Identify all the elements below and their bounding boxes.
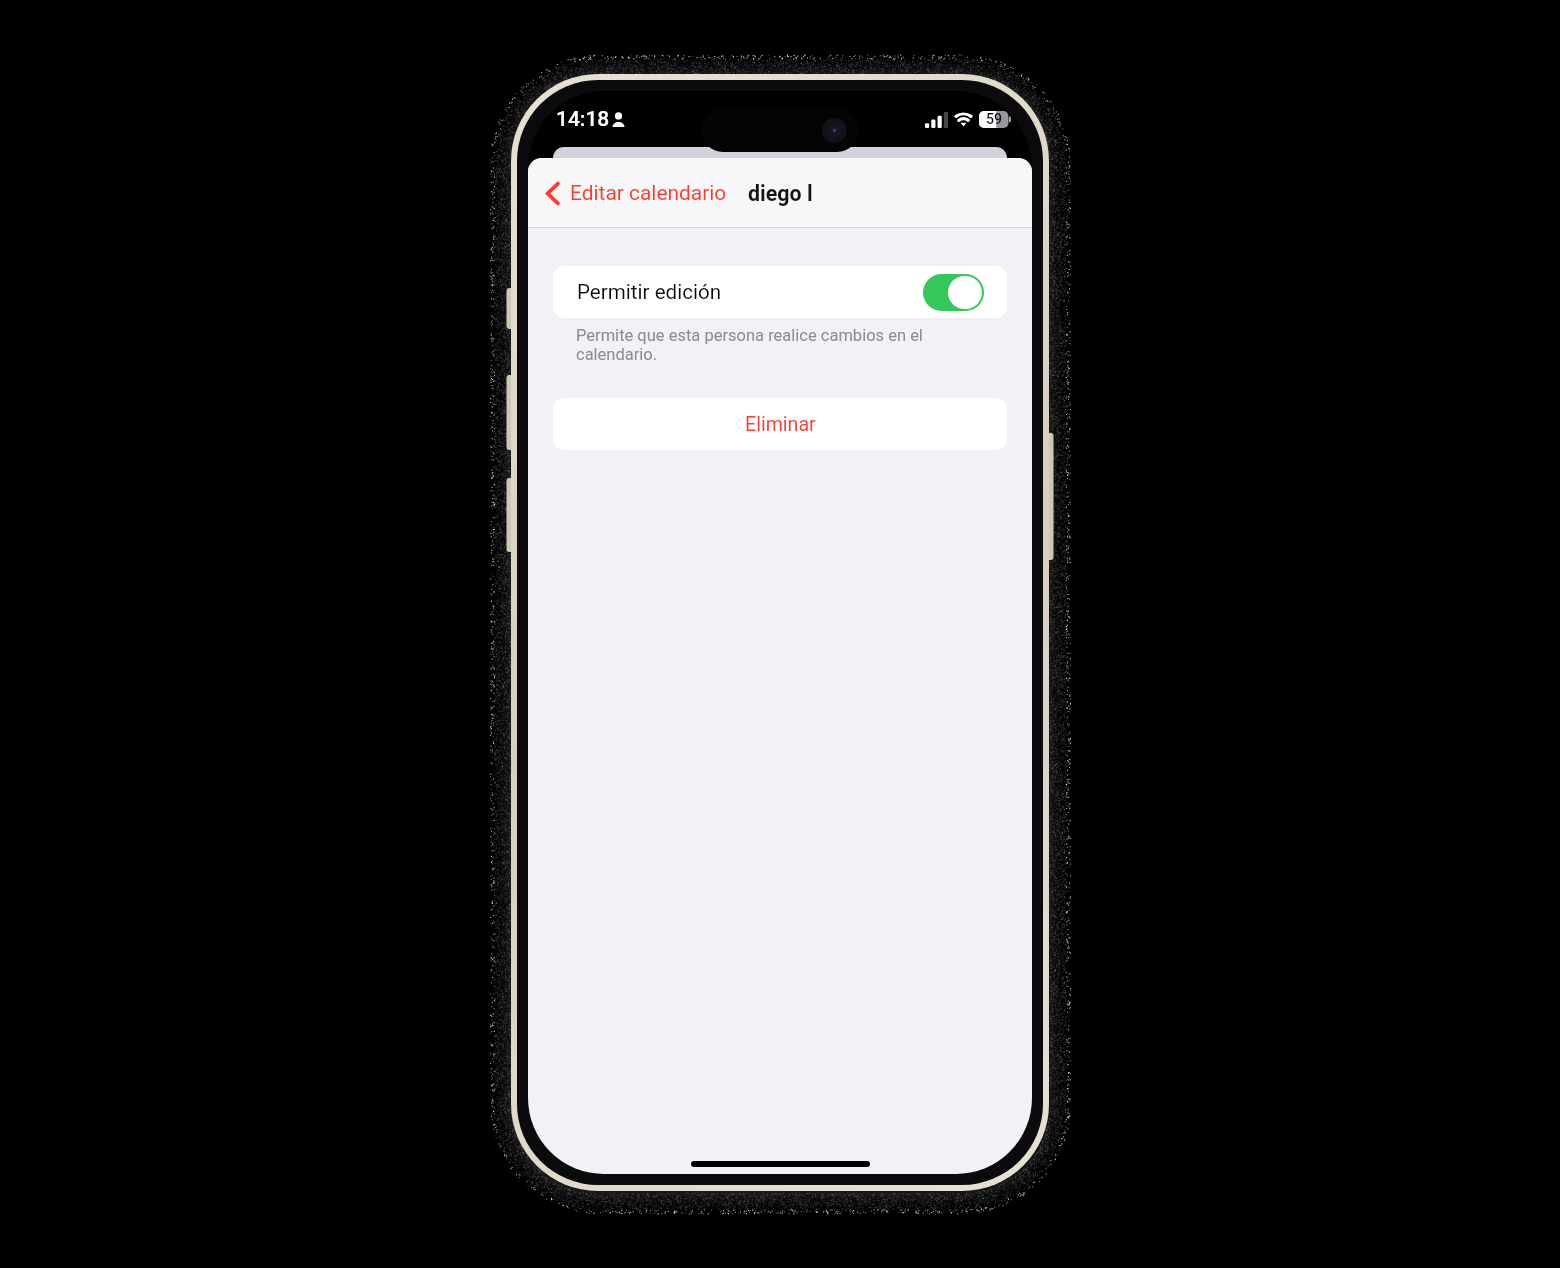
button[interactable]: Permitir edición xyxy=(553,266,1007,318)
staticText: diego l xyxy=(748,181,813,206)
staticText: Permitir edición xyxy=(577,280,722,304)
button[interactable]: Eliminar xyxy=(553,398,1007,450)
staticText: Permite que esta persona realice cambios… xyxy=(576,326,960,364)
staticText: Editar calendario xyxy=(570,181,727,205)
button[interactable]: Permitir edición xyxy=(923,274,984,311)
staticText: 14:18 xyxy=(556,107,610,132)
button[interactable]: Volver a Editar calendario xyxy=(543,173,729,213)
staticText: Eliminar xyxy=(745,413,816,436)
staticText: 59 xyxy=(986,111,1003,128)
